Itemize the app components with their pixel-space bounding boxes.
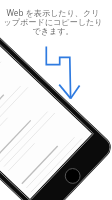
staticText: Web を表示したり、クリップボードにコピーしたりできます。 (3, 7, 103, 36)
